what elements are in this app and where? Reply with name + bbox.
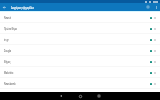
- button[interactable]: Newsit: [0, 12, 160, 23]
- staticText: in.gr: [4, 38, 9, 41]
- button[interactable]: Recent apps: [95, 92, 103, 100]
- button[interactable]: Home: [76, 92, 84, 100]
- button[interactable]: Enable source: [150, 48, 157, 54]
- staticText: Newsit: [4, 16, 11, 19]
- button[interactable]: Navigate up: [0, 3, 9, 11]
- button[interactable]: Πρώτο Θέμα: [0, 23, 160, 34]
- button[interactable]: Enable source: [150, 26, 157, 32]
- button[interactable]: Select all: [144, 3, 152, 11]
- staticText: Διαχείριση εφημερίδων: [11, 6, 34, 8]
- button[interactable]: Makeleio: [0, 67, 160, 78]
- button[interactable]: Φήμες: [0, 56, 160, 67]
- staticText: Newsbomb: [4, 82, 16, 85]
- staticText: Makeleio: [4, 71, 13, 74]
- button[interactable]: Back: [57, 92, 65, 100]
- button[interactable]: Enable source: [150, 15, 157, 21]
- button[interactable]: Enable source: [150, 81, 157, 87]
- staticText: Πρώτο Θέμα: [4, 27, 17, 30]
- staticText: Φήμες: [4, 60, 11, 63]
- button[interactable]: Enable source: [150, 37, 157, 43]
- button[interactable]: Newsbomb: [0, 78, 160, 89]
- button[interactable]: Zougla: [0, 45, 160, 56]
- staticText: Zougla: [4, 49, 11, 52]
- button[interactable]: in.gr: [0, 34, 160, 45]
- button[interactable]: Enable source: [150, 59, 157, 65]
- button[interactable]: Enable source: [150, 70, 157, 76]
- button[interactable]: More options: [152, 3, 160, 11]
